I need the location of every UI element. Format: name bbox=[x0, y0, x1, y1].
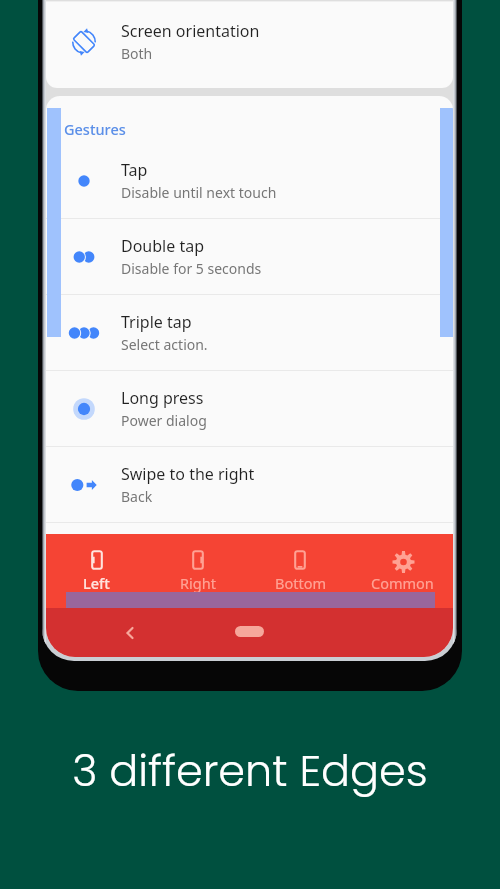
staticText: Double tap bbox=[121, 235, 204, 257]
button[interactable]: Tap bbox=[46, 143, 453, 218]
button[interactable]: Bottom bbox=[249, 534, 351, 608]
button[interactable]: Triple tap bbox=[46, 295, 453, 370]
button[interactable]: Home bbox=[235, 626, 264, 637]
staticText: Triple tap bbox=[121, 311, 192, 333]
staticText: Power dialog bbox=[121, 411, 207, 430]
staticText: Gestures bbox=[64, 119, 126, 139]
staticText: Long press bbox=[121, 387, 204, 409]
button[interactable]: Screen orientation bbox=[46, 2, 453, 88]
staticText: Common bbox=[371, 573, 434, 593]
button[interactable]: Double tap bbox=[46, 219, 453, 294]
staticText: Select action. bbox=[121, 335, 208, 354]
staticText: Screen orientation bbox=[121, 20, 260, 42]
button[interactable]: Left bbox=[46, 534, 147, 608]
staticText: Both bbox=[121, 44, 153, 63]
staticText: Back bbox=[121, 487, 153, 506]
staticText: Swipe to the right bbox=[121, 463, 255, 485]
button[interactable]: Long press bbox=[46, 371, 453, 446]
staticText: Disable until next touch bbox=[121, 183, 277, 202]
button[interactable]: Right bbox=[147, 534, 249, 608]
staticText: Tap bbox=[121, 159, 148, 181]
button[interactable]: Common bbox=[351, 534, 453, 608]
button[interactable]: Swipe to the right bbox=[46, 447, 453, 522]
button[interactable]: Back bbox=[121, 624, 139, 642]
staticText: Right bbox=[180, 573, 216, 593]
staticText: 3 different Edges bbox=[72, 741, 428, 801]
staticText: Bottom bbox=[275, 573, 326, 593]
staticText: Left bbox=[83, 573, 110, 593]
staticText: Disable for 5 seconds bbox=[121, 259, 262, 278]
